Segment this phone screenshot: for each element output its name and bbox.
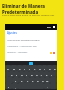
staticText: Eliminar de Manera (2, 3, 46, 9)
staticText: Predeterminada (2, 9, 39, 15)
staticText: Teléfono – llamadas (7, 51, 28, 54)
staticText: Ajustes (7, 31, 17, 35)
staticText: b (37, 79, 39, 82)
button[interactable]: o (47, 65, 52, 71)
staticText: n (42, 79, 44, 82)
staticText: w (13, 67, 15, 70)
staticText: v (32, 79, 34, 82)
button[interactable]: s (14, 71, 19, 77)
staticText: m (46, 79, 49, 82)
staticText: i (44, 67, 45, 70)
button[interactable]: d (19, 71, 24, 77)
button[interactable]: q (5, 65, 11, 71)
staticText: o (49, 67, 51, 70)
button[interactable]: u (37, 65, 42, 71)
staticText: f (26, 73, 27, 76)
button[interactable]: i (42, 65, 47, 71)
staticText: 9:41 (47, 26, 52, 29)
staticText: s (16, 73, 18, 76)
button[interactable]: p (52, 65, 57, 71)
staticText: Navegador – seleccionar app (7, 45, 37, 48)
staticText: x (21, 79, 23, 82)
staticText: k (46, 73, 48, 76)
staticText: . (47, 85, 48, 88)
staticText: y (34, 67, 36, 70)
button[interactable]: x (19, 77, 25, 83)
staticText: q (7, 67, 9, 70)
staticText: g (31, 73, 33, 76)
staticText: c (27, 79, 29, 82)
button[interactable]: . (44, 83, 50, 89)
staticText: u (39, 67, 41, 70)
button[interactable]: ? (5, 83, 12, 89)
staticText: t (29, 67, 30, 70)
button[interactable]: m (45, 77, 50, 83)
staticText: j (41, 73, 42, 76)
button[interactable]: c (25, 77, 30, 83)
button[interactable]: w (11, 65, 17, 71)
button[interactable]: z (13, 77, 19, 83)
button[interactable]: v (30, 77, 35, 83)
button[interactable]: l (49, 71, 54, 77)
staticText: a (11, 73, 13, 76)
staticText: z (15, 79, 17, 82)
staticText: Paso a paso para quitar la app por defec… (2, 13, 55, 16)
button[interactable]: n (40, 77, 45, 83)
staticText: h (36, 73, 38, 76)
staticText: d (21, 73, 23, 76)
staticText: l (51, 73, 52, 76)
button[interactable]: , (12, 83, 18, 89)
button[interactable]: e (17, 65, 22, 71)
button[interactable]: g (29, 71, 34, 77)
button[interactable]: k (44, 71, 49, 77)
button[interactable]: h (34, 71, 39, 77)
staticText: p (54, 67, 56, 70)
button[interactable]: a (9, 71, 14, 77)
staticText: r (24, 67, 25, 70)
button[interactable]: t (27, 65, 32, 71)
staticText: e (19, 67, 21, 70)
button[interactable]: r (22, 65, 27, 71)
button[interactable]: j (39, 71, 44, 77)
staticText: ? (8, 85, 10, 88)
staticText: Aplicaciones predeterminadas (7, 39, 40, 42)
button[interactable]: f (24, 71, 29, 77)
button[interactable]: b (35, 77, 40, 83)
button[interactable]: y (32, 65, 37, 71)
